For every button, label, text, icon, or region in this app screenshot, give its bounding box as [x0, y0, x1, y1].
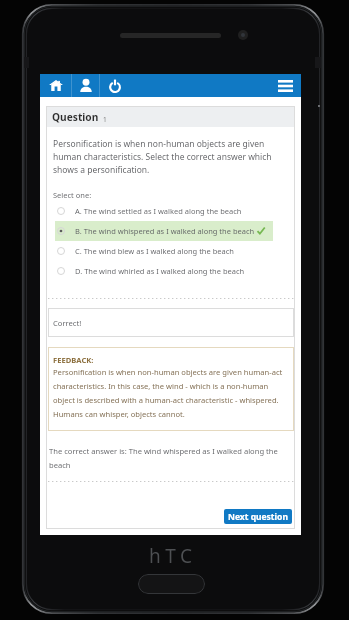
- button[interactable]: Next question: [224, 509, 292, 524]
- staticText: Personification is when non-human object…: [53, 367, 287, 419]
- button[interactable]: D. The wind whirled as I walked along th…: [46, 261, 295, 281]
- button[interactable]: Log out: [100, 74, 130, 97]
- button[interactable]: My profile: [72, 74, 99, 97]
- staticText: The correct answer is: The wind whispere…: [49, 446, 289, 470]
- button[interactable]: Home: [40, 74, 71, 97]
- staticText: FEEDBACK:: [53, 355, 94, 365]
- button[interactable]: C. The wind blew as I walked along the b…: [46, 241, 295, 261]
- button[interactable]: Menu: [270, 74, 301, 97]
- staticText: 1: [103, 115, 107, 124]
- staticText: Personification is when non-human object…: [53, 138, 287, 176]
- staticText: C. The wind blew as I walked along the b…: [75, 246, 234, 256]
- button[interactable]: Home button: [138, 574, 205, 594]
- button[interactable]: A. The wind settled as I walked along th…: [46, 201, 295, 221]
- staticText: Correct!: [53, 318, 82, 328]
- staticText: Select one:: [53, 190, 92, 200]
- staticText: A. The wind settled as I walked along th…: [75, 206, 242, 216]
- staticText: Question: [52, 110, 99, 124]
- button[interactable]: B. The wind whispered as I walked along …: [46, 221, 295, 241]
- staticText: B. The wind whispered as I walked along …: [75, 226, 255, 236]
- staticText: Next question: [228, 511, 288, 523]
- staticText: hTC: [149, 543, 197, 565]
- staticText: D. The wind whirled as I walked along th…: [75, 266, 245, 276]
